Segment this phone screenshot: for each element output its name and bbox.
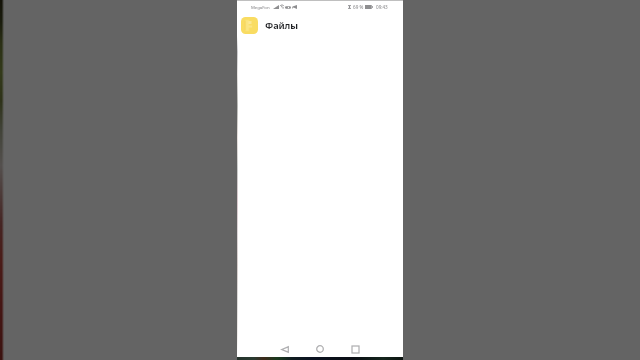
button[interactable]: Files app icon [241,17,258,34]
button[interactable]: Home [306,340,334,358]
button[interactable]: Recent apps [341,340,369,358]
staticText: 09:43 [376,4,388,10]
staticText: 69 % [353,4,364,10]
staticText: MegaFon [251,4,270,10]
staticText: Файлы [265,19,298,32]
button[interactable]: Back [271,340,299,358]
